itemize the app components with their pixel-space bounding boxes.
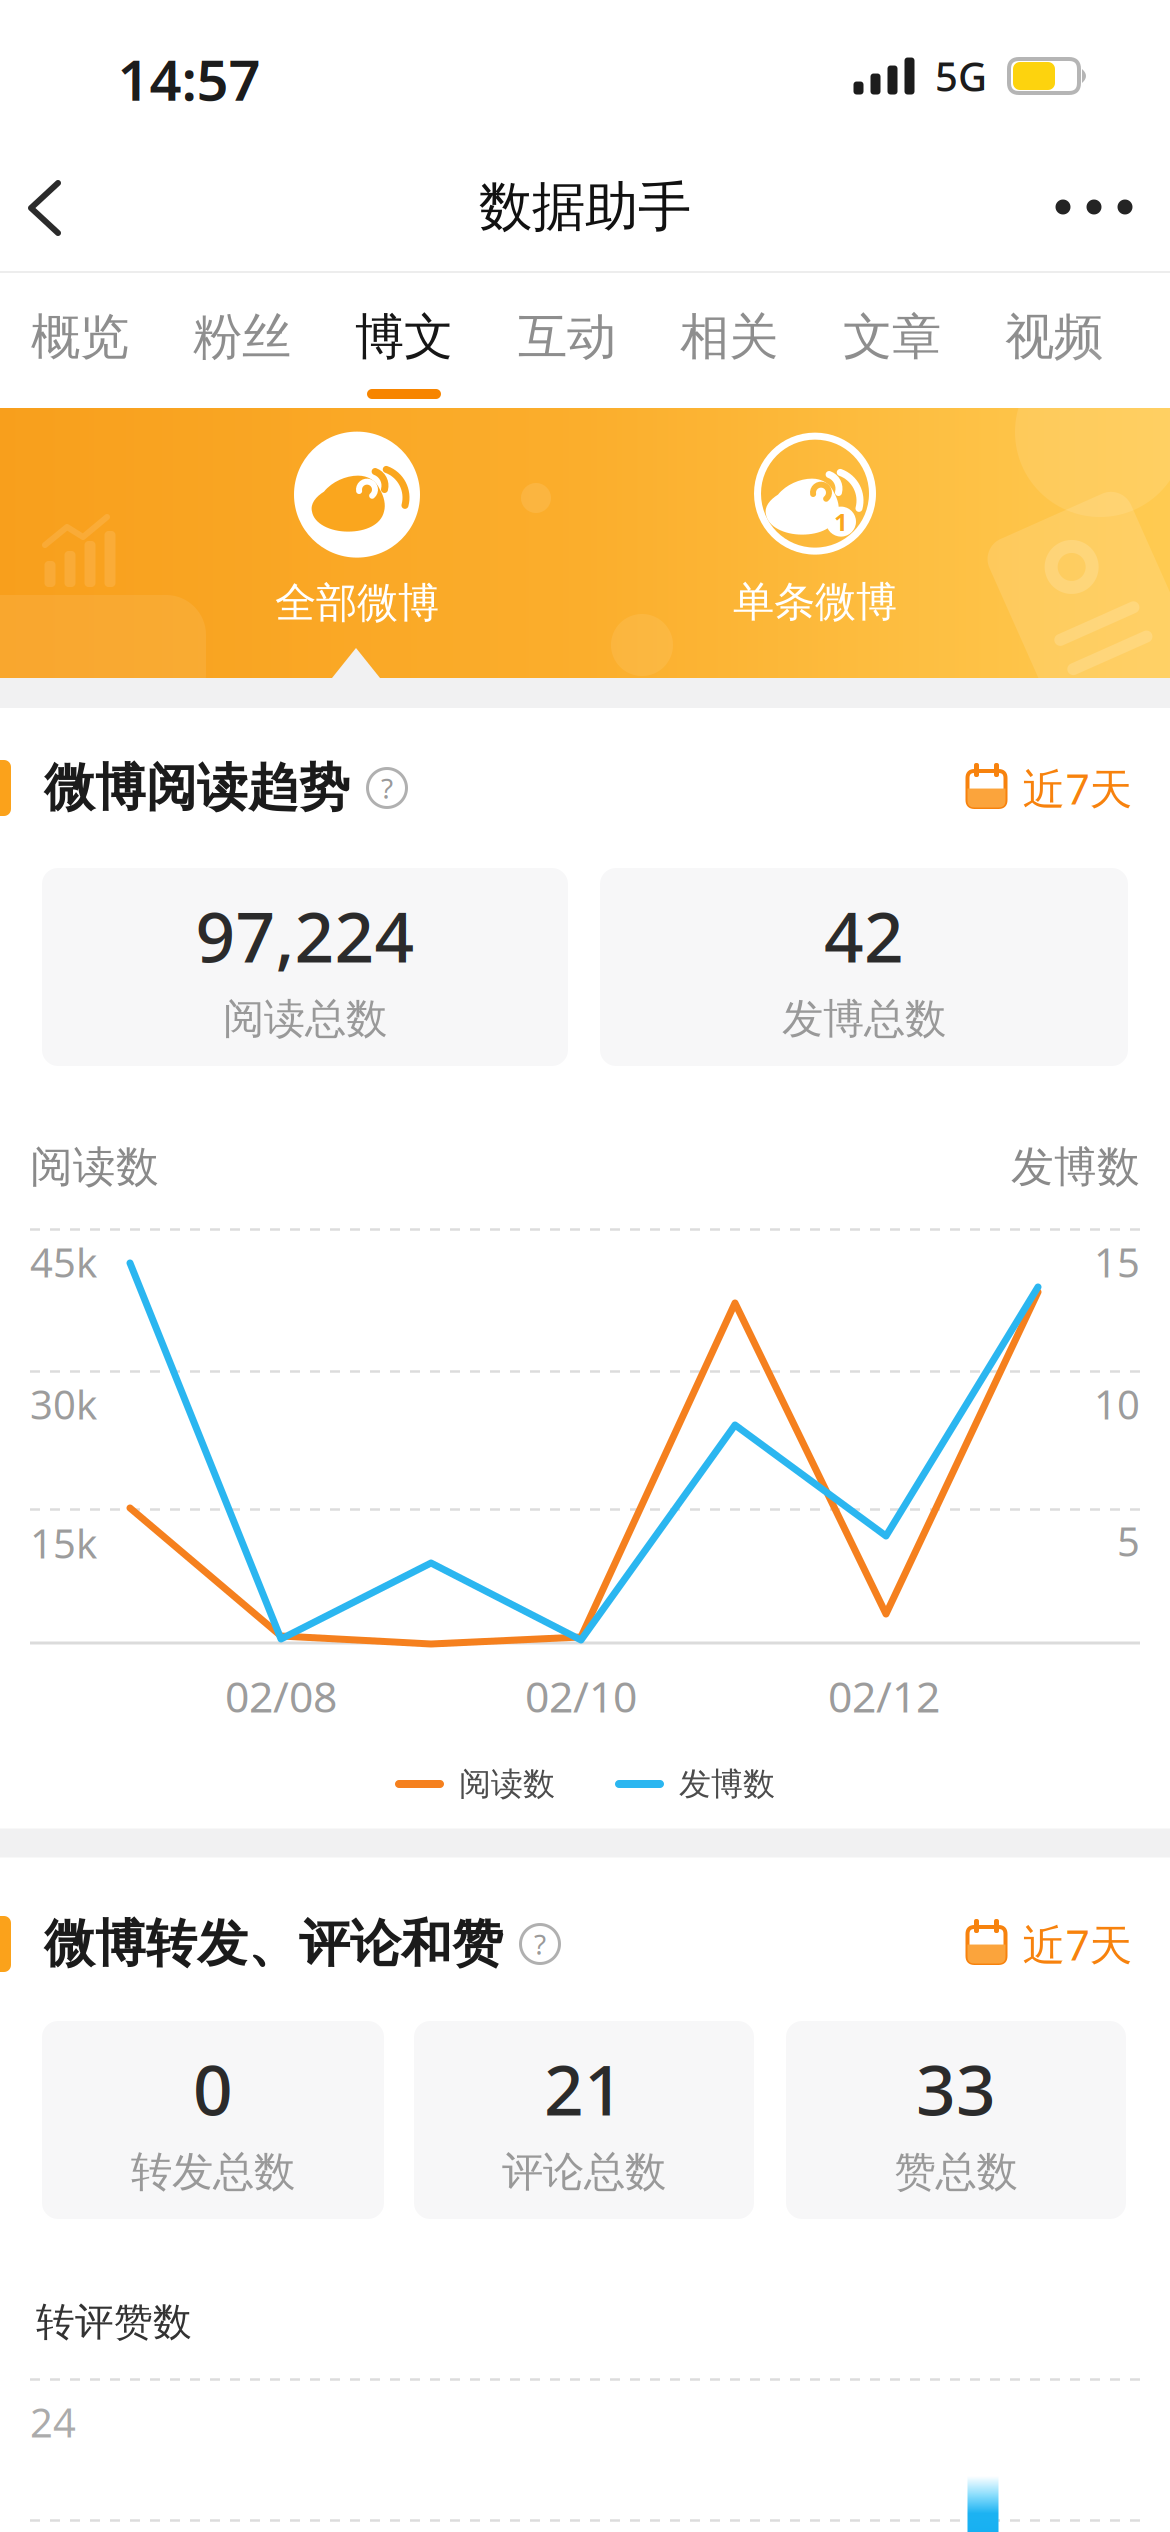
staticText: 发博总数 [782, 994, 946, 1044]
staticText: 单条微博 [733, 577, 897, 627]
button[interactable]: 文章 [818, 275, 966, 405]
staticText: 5 [1117, 1514, 1140, 1567]
staticText: 1 [834, 506, 848, 538]
button[interactable]: 全部微博 [227, 424, 487, 636]
staticText: 概览 [31, 307, 129, 367]
staticText: 33 [916, 2043, 996, 2135]
staticText: 全部微博 [275, 578, 439, 628]
button[interactable]: 1 [685, 424, 945, 636]
staticText: 转发总数 [131, 2147, 295, 2197]
staticText: 文章 [843, 307, 941, 367]
staticText: ? [381, 769, 393, 807]
staticText: 近7天 [1022, 1916, 1132, 1972]
staticText: 发博数 [679, 1764, 775, 1804]
staticText: 阅读总数 [223, 994, 387, 1044]
staticText: 粉丝 [193, 307, 291, 367]
staticText: 赞总数 [894, 2147, 1017, 2197]
button[interactable]: 粉丝 [168, 275, 316, 405]
button[interactable]: 博文 [330, 275, 478, 405]
staticText: 15k [30, 1516, 97, 1569]
staticText: 24 [30, 2395, 76, 2448]
staticText: 45k [30, 1235, 97, 1288]
staticText: ? [534, 1925, 546, 1963]
staticText: 15 [1094, 1235, 1140, 1288]
staticText: 发博数 [1011, 1141, 1140, 1193]
staticText: 数据助手 [479, 174, 691, 240]
staticText: 0 [193, 2043, 233, 2135]
staticText: 14:57 [117, 42, 260, 116]
button[interactable]: 互动 [493, 275, 641, 405]
staticText: 阅读数 [459, 1764, 555, 1804]
button[interactable]: 近7天 [965, 1916, 1132, 1972]
button[interactable]: Back [25, 178, 85, 238]
staticText: 42 [824, 890, 904, 982]
staticText: 相关 [680, 307, 778, 367]
staticText: 97,224 [195, 890, 414, 982]
staticText: 02/10 [525, 1668, 637, 1724]
button[interactable]: 相关 [655, 275, 803, 405]
staticText: 近7天 [1022, 760, 1132, 816]
staticText: 评论总数 [502, 2147, 666, 2197]
button[interactable]: More [1049, 179, 1139, 235]
button[interactable]: 视频 [980, 275, 1128, 405]
staticText: 视频 [1005, 307, 1103, 367]
staticText: 02/08 [225, 1668, 337, 1724]
staticText: 微博阅读趋势 [44, 757, 350, 819]
staticText: 21 [544, 2043, 624, 2135]
staticText: 转评赞数 [36, 2298, 192, 2346]
staticText: 5G [935, 49, 987, 102]
staticText: 02/12 [828, 1668, 940, 1724]
staticText: 阅读数 [30, 1141, 159, 1193]
staticText: 互动 [518, 307, 616, 367]
staticText: 10 [1094, 1377, 1140, 1430]
staticText: 博文 [355, 307, 453, 367]
button[interactable]: 近7天 [965, 760, 1132, 816]
button[interactable]: 概览 [6, 275, 154, 405]
staticText: 微博转发、评论和赞 [44, 1913, 503, 1975]
button[interactable]: Help [366, 767, 408, 809]
staticText: 30k [30, 1377, 97, 1430]
button[interactable]: Help [519, 1923, 561, 1965]
